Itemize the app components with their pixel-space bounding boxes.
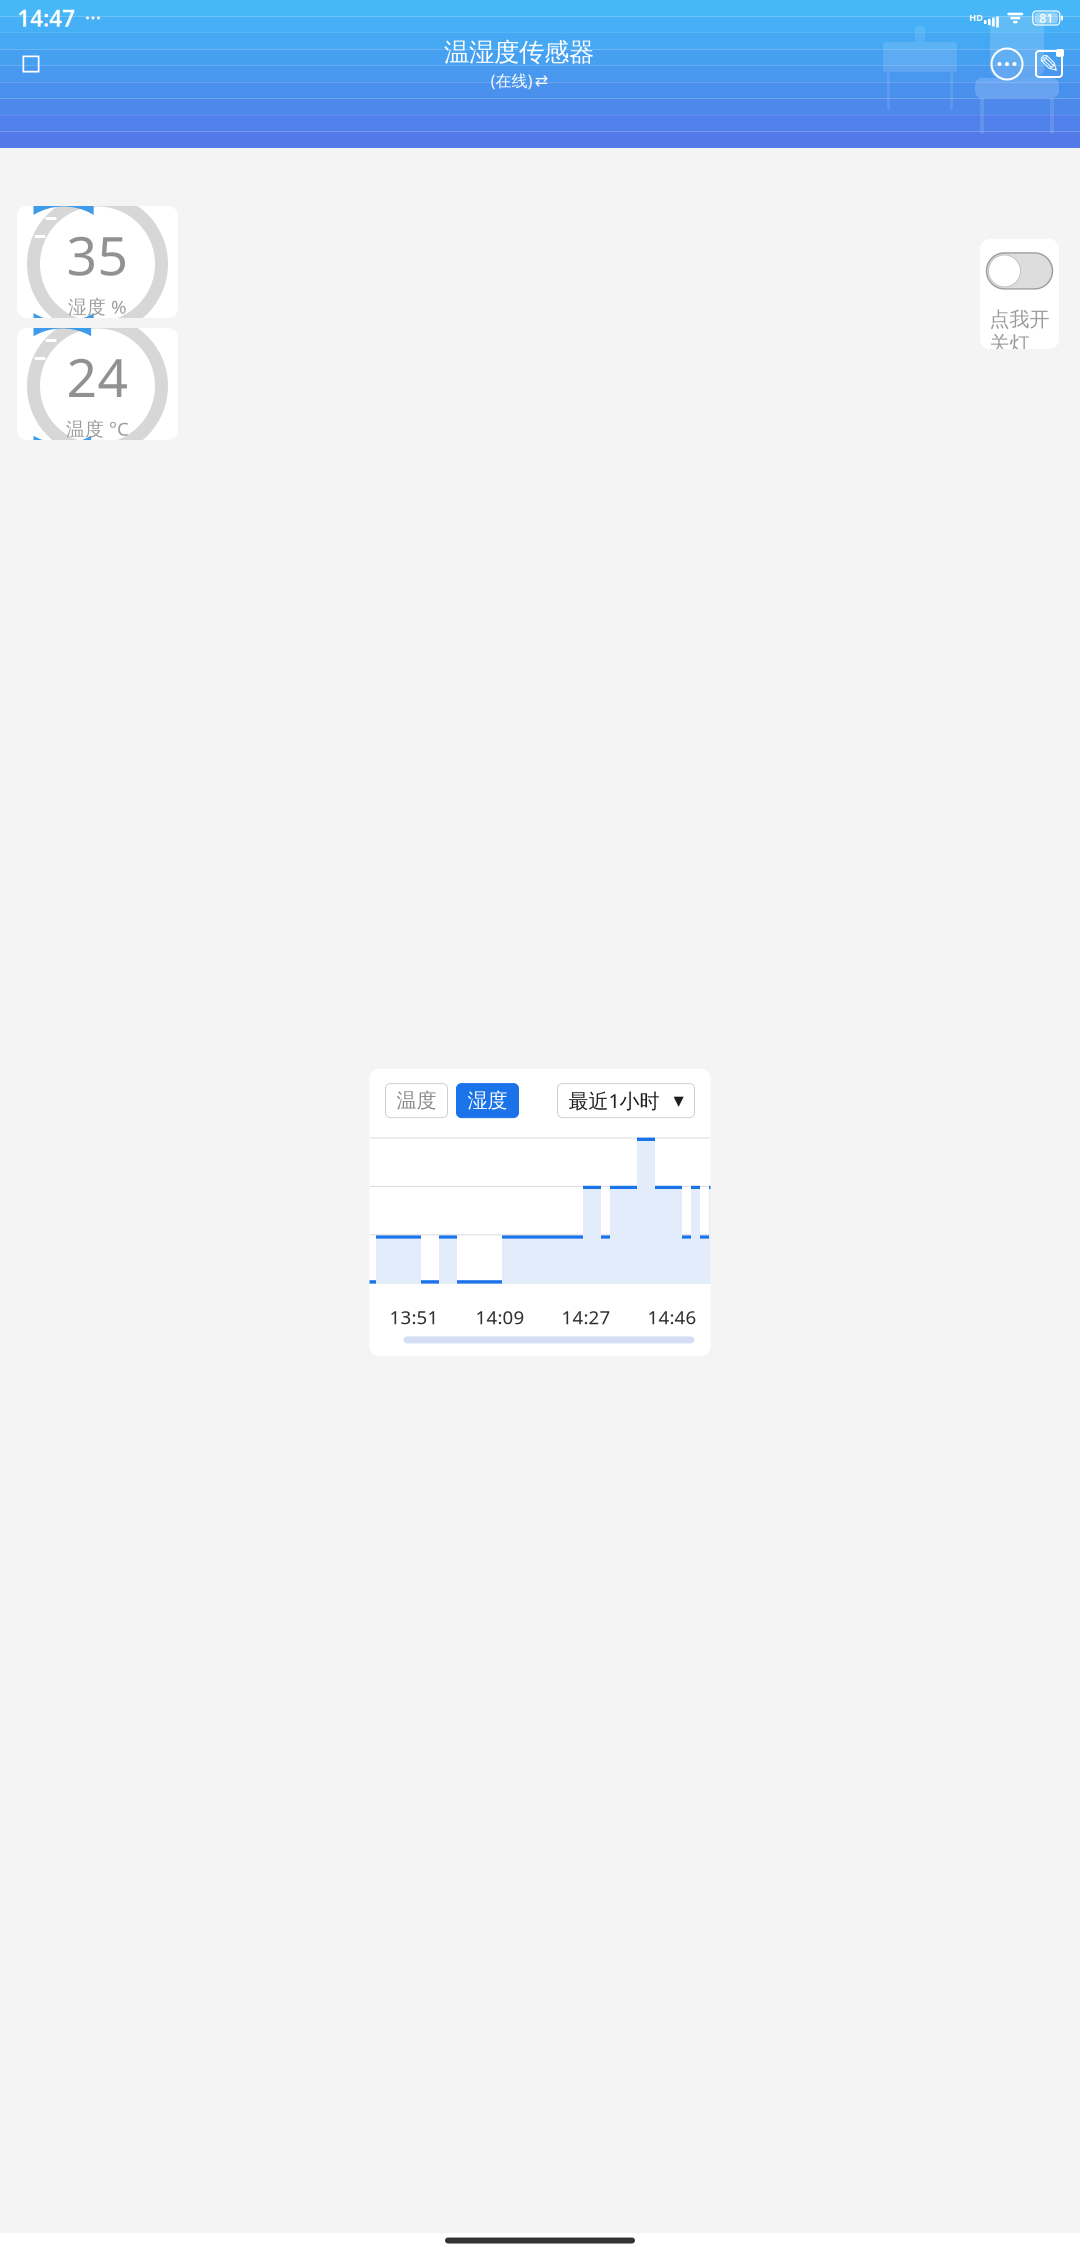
- staticText: (在线): [490, 70, 532, 91]
- staticText: 24: [66, 341, 128, 412]
- staticText: 14:09: [475, 1305, 524, 1329]
- staticText: 81: [1039, 10, 1053, 26]
- staticText: 点我开关灯: [989, 307, 1049, 356]
- button[interactable]: 温度: [385, 1084, 447, 1118]
- staticText: 13:51: [389, 1305, 438, 1329]
- button[interactable]: 24: [17, 328, 178, 440]
- staticText: ⇄: [534, 71, 547, 90]
- button[interactable]: 最近1小时: [557, 1084, 694, 1118]
- button[interactable]: 点我开关灯: [980, 239, 1059, 349]
- button[interactable]: 湿度: [456, 1084, 518, 1118]
- staticText: 温度 °C: [66, 416, 129, 441]
- staticText: 温度: [396, 1088, 436, 1113]
- button[interactable]: 35: [17, 206, 178, 318]
- staticText: ▼: [673, 1093, 683, 1108]
- staticText: ✎: [1038, 50, 1059, 78]
- button[interactable]: More options: [986, 42, 1028, 86]
- staticText: 湿度: [467, 1088, 507, 1113]
- staticText: 14:47: [17, 3, 75, 33]
- staticText: 14:27: [561, 1305, 610, 1329]
- staticText: 35: [66, 219, 128, 290]
- staticText: HD: [969, 11, 983, 24]
- button[interactable]: Edit device: [1028, 42, 1070, 86]
- button[interactable]: Back: [10, 42, 52, 86]
- staticText: 14:46: [647, 1305, 696, 1329]
- staticText: 湿度 %: [68, 294, 127, 319]
- staticText: 最近1小时: [568, 1087, 659, 1114]
- staticText: 温湿度传感器: [444, 37, 594, 68]
